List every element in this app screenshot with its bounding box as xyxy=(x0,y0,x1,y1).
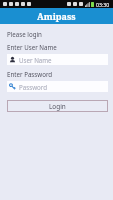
staticText: Please login xyxy=(7,30,42,38)
button[interactable]: User xyxy=(7,54,108,65)
staticText: Login xyxy=(49,102,66,111)
staticText: Password xyxy=(19,83,47,91)
other: Password xyxy=(9,83,16,90)
staticText: User Name xyxy=(19,56,52,64)
staticText: Enter User Name xyxy=(7,43,57,51)
staticText: 03:30 xyxy=(96,1,110,8)
staticText: Enter Password xyxy=(7,70,53,78)
button[interactable]: Login xyxy=(7,100,108,112)
other: User xyxy=(9,56,16,63)
staticText: Amipass xyxy=(37,10,76,22)
button[interactable]: Password xyxy=(7,81,108,92)
